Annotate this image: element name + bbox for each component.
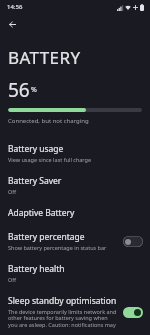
staticText: Battery usage bbox=[8, 143, 64, 155]
button[interactable]: Back bbox=[5, 17, 19, 31]
button[interactable]: Battery percentage bbox=[0, 225, 150, 257]
staticText: 56 bbox=[8, 77, 30, 103]
button[interactable]: Adaptive Battery bbox=[0, 201, 150, 225]
staticText: Off bbox=[8, 188, 17, 195]
staticText: Battery Saver bbox=[8, 175, 62, 187]
staticText: 14:56 bbox=[7, 3, 23, 11]
staticText: Connected, but not charging bbox=[8, 117, 89, 125]
staticText: BATTERY bbox=[8, 46, 81, 69]
button[interactable]: Battery Saver bbox=[0, 169, 150, 201]
staticText: Show battery percentage in status bar bbox=[8, 244, 107, 251]
button[interactable]: Battery health bbox=[0, 257, 150, 289]
button[interactable]: Toggle off bbox=[123, 236, 143, 247]
staticText: View usage since last full charge bbox=[8, 156, 92, 163]
staticText: Off bbox=[8, 276, 17, 283]
button[interactable]: Sleep standby optimisation bbox=[0, 289, 150, 335]
button[interactable]: Toggle on bbox=[123, 307, 143, 318]
staticText: Sleep standby optimisation bbox=[8, 295, 117, 307]
staticText: Battery health bbox=[8, 263, 65, 275]
staticText: % bbox=[31, 85, 37, 95]
staticText: Adaptive Battery bbox=[8, 207, 75, 219]
staticText: Battery percentage bbox=[8, 231, 85, 243]
staticText: The device temporarily limits network an… bbox=[8, 308, 117, 329]
button[interactable]: Battery usage bbox=[0, 137, 150, 169]
